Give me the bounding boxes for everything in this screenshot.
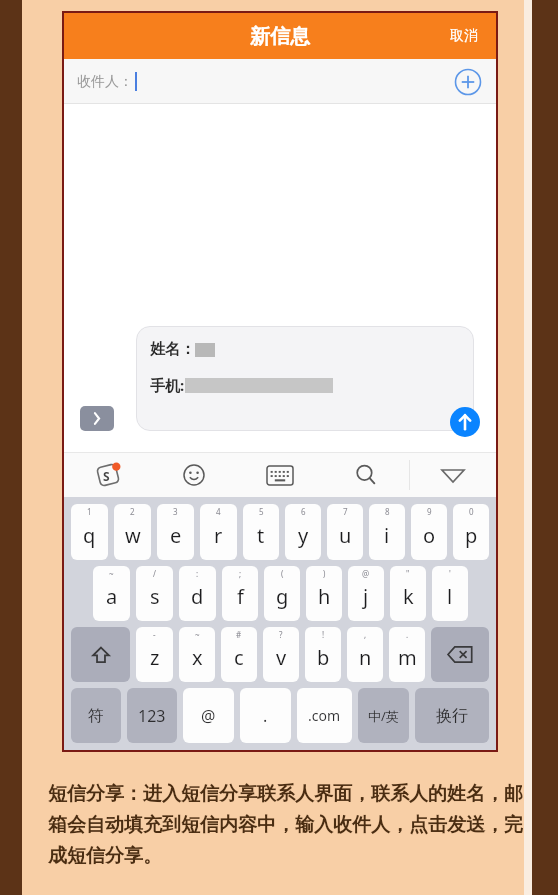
button[interactable]: 6 bbox=[285, 504, 321, 560]
staticText: ( bbox=[281, 568, 284, 579]
button[interactable]: 8 bbox=[369, 504, 405, 560]
button[interactable]: 0 bbox=[453, 504, 489, 560]
staticText: 中/英 bbox=[368, 707, 399, 725]
staticText: i bbox=[384, 522, 390, 549]
button[interactable]: 换行 bbox=[415, 688, 489, 743]
button[interactable]: ~ bbox=[179, 627, 215, 682]
button[interactable]: 取消 bbox=[446, 23, 482, 49]
staticText: t bbox=[257, 522, 265, 549]
staticText: m bbox=[398, 644, 417, 671]
button[interactable]: Add recipient bbox=[454, 68, 482, 96]
button[interactable]: ~ bbox=[93, 566, 130, 621]
button[interactable]: 中/英 bbox=[358, 688, 409, 743]
staticText: 123 bbox=[138, 705, 166, 727]
staticText: ! bbox=[322, 629, 325, 640]
staticText: a bbox=[106, 583, 118, 610]
button[interactable]: 5 bbox=[243, 504, 279, 560]
button[interactable]: 符 bbox=[71, 688, 121, 743]
staticText: " bbox=[406, 568, 410, 579]
staticText: . bbox=[406, 629, 409, 640]
staticText: , bbox=[364, 629, 367, 640]
staticText: 手机: bbox=[150, 375, 185, 395]
staticText: y bbox=[298, 522, 309, 549]
staticText: ~ bbox=[195, 629, 200, 640]
staticText: o bbox=[423, 522, 436, 549]
staticText: q bbox=[83, 522, 96, 549]
button[interactable]: Hide keyboard bbox=[410, 453, 496, 497]
staticText: 收件人： bbox=[77, 73, 133, 91]
button[interactable]: Keyboard bbox=[237, 453, 323, 497]
staticText: 1 bbox=[87, 506, 92, 517]
button[interactable]: ? bbox=[263, 627, 299, 682]
button[interactable]: .com bbox=[297, 688, 352, 743]
staticText: h bbox=[318, 583, 331, 610]
button[interactable]: Expand bbox=[80, 406, 114, 431]
button[interactable]: 姓名： bbox=[136, 326, 474, 431]
staticText: 短信分享：进入短信分享联系人界面，联系人的姓名，邮箱会自动填充到短信内容中，输入… bbox=[48, 782, 528, 868]
button[interactable]: 9 bbox=[411, 504, 447, 560]
staticText: @ bbox=[362, 568, 370, 579]
staticText: n bbox=[359, 644, 372, 671]
staticText: : bbox=[196, 568, 199, 579]
button[interactable]: 1 bbox=[71, 504, 108, 560]
staticText: e bbox=[170, 522, 182, 549]
button[interactable]: . bbox=[240, 688, 291, 743]
staticText: 7 bbox=[343, 506, 348, 517]
staticText: w bbox=[125, 522, 141, 549]
button[interactable]: ) bbox=[306, 566, 342, 621]
staticText: 6 bbox=[301, 506, 306, 517]
staticText: j bbox=[363, 583, 369, 610]
staticText: k bbox=[403, 583, 414, 610]
staticText: ? bbox=[279, 629, 283, 640]
button[interactable]: ( bbox=[264, 566, 300, 621]
button[interactable]: " bbox=[390, 566, 426, 621]
staticText: l bbox=[447, 583, 453, 610]
button[interactable]: Backspace bbox=[431, 627, 489, 682]
staticText: s bbox=[150, 583, 160, 610]
button[interactable]: , bbox=[347, 627, 383, 682]
staticText: d bbox=[191, 583, 204, 610]
staticText: 换行 bbox=[436, 706, 468, 726]
button[interactable]: 123 bbox=[127, 688, 177, 743]
staticText: 8 bbox=[385, 506, 390, 517]
staticText: 姓名： bbox=[150, 340, 195, 359]
staticText: 符 bbox=[88, 706, 104, 726]
staticText: ' bbox=[449, 568, 451, 579]
staticText: ) bbox=[323, 568, 326, 579]
button[interactable]: 3 bbox=[157, 504, 194, 560]
button[interactable]: Emoji bbox=[151, 453, 237, 497]
staticText: b bbox=[317, 644, 330, 671]
staticText: S bbox=[103, 468, 110, 484]
button[interactable]: @ bbox=[183, 688, 234, 743]
staticText: .com bbox=[308, 706, 341, 725]
staticText: 9 bbox=[427, 506, 432, 517]
staticText: x bbox=[192, 644, 203, 671]
button[interactable]: Input method bbox=[64, 453, 151, 497]
button[interactable]: ; bbox=[222, 566, 258, 621]
button[interactable]: - bbox=[136, 627, 173, 682]
button[interactable]: / bbox=[136, 566, 173, 621]
staticText: # bbox=[236, 629, 242, 640]
button[interactable]: Send bbox=[450, 407, 480, 437]
button[interactable]: . bbox=[389, 627, 425, 682]
button[interactable]: Shift bbox=[71, 627, 130, 682]
staticText: z bbox=[150, 644, 160, 671]
staticText: 3 bbox=[173, 506, 178, 517]
staticText: ; bbox=[239, 568, 242, 579]
button[interactable]: ! bbox=[305, 627, 341, 682]
button[interactable]: 2 bbox=[114, 504, 151, 560]
staticText: u bbox=[339, 522, 352, 549]
staticText: c bbox=[234, 644, 244, 671]
button[interactable]: 7 bbox=[327, 504, 363, 560]
button[interactable]: ' bbox=[432, 566, 468, 621]
button[interactable]: Search bbox=[323, 453, 409, 497]
staticText: 0 bbox=[469, 506, 474, 517]
button[interactable]: : bbox=[179, 566, 216, 621]
button[interactable]: @ bbox=[348, 566, 384, 621]
button[interactable]: 4 bbox=[200, 504, 237, 560]
button[interactable]: # bbox=[221, 627, 257, 682]
staticText: . bbox=[263, 705, 268, 727]
staticText: @ bbox=[201, 705, 216, 727]
staticText: 2 bbox=[130, 506, 135, 517]
staticText: v bbox=[276, 644, 287, 671]
